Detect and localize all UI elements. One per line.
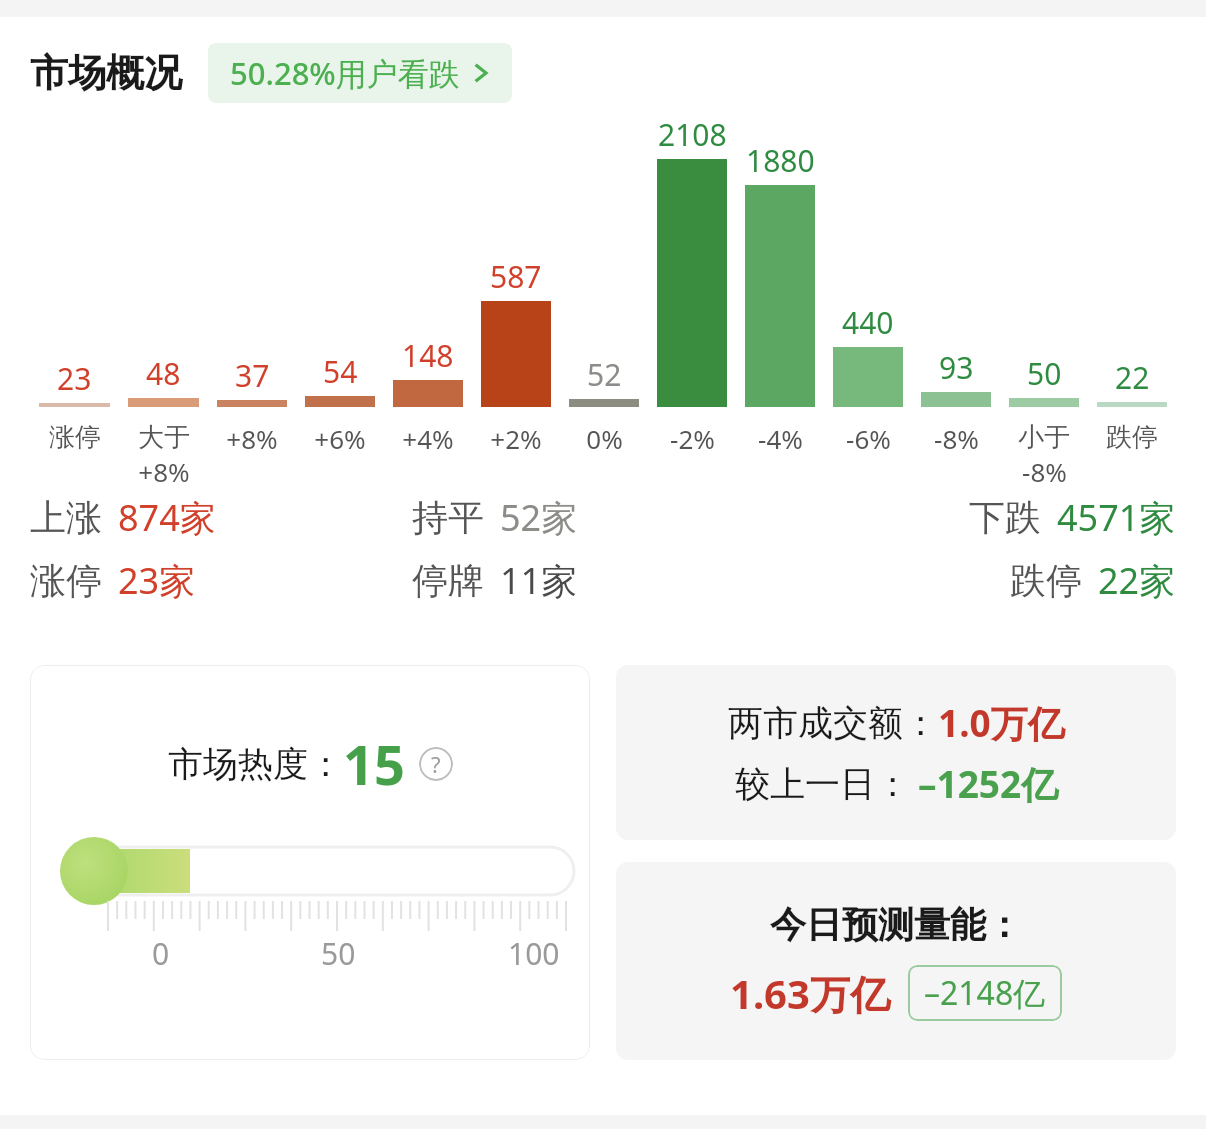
staticText: 52家 [500, 493, 578, 542]
button[interactable]: 23 [30, 103, 119, 493]
staticText: 上涨 [30, 495, 102, 540]
staticText: –2148亿 [924, 971, 1046, 1015]
staticText: 今日预测量能： [770, 902, 1022, 947]
staticText: 23家 [118, 556, 196, 605]
button[interactable]: 市场热度： [30, 665, 590, 1060]
staticText: -4% [758, 421, 803, 456]
staticText: 较上一日： [735, 762, 910, 806]
staticText: 市场概况 [30, 49, 182, 97]
staticText: 市场热度： [168, 742, 343, 786]
button[interactable]: 37 [208, 103, 296, 493]
staticText: -6% [846, 421, 891, 456]
staticText: 22家 [1098, 556, 1176, 605]
staticText: 440 [842, 302, 894, 343]
staticText: 52 [587, 354, 622, 395]
staticText: -2% [670, 421, 715, 456]
staticText: 1880 [746, 140, 815, 181]
staticText: 50 [1027, 353, 1062, 394]
staticText: 1.0万亿 [938, 697, 1065, 748]
staticText: 587 [490, 256, 542, 297]
button[interactable]: 今日预测量能： [616, 862, 1176, 1060]
staticText: +6% [314, 421, 366, 456]
staticText: 大于 [138, 421, 190, 454]
staticText: 小于 [1018, 421, 1070, 454]
staticText: 23 [57, 358, 92, 399]
staticText: 4571家 [1057, 493, 1176, 542]
button[interactable]: 两市成交额： [616, 665, 1176, 840]
button[interactable]: 2108 [648, 103, 736, 493]
button[interactable]: 52 [560, 103, 648, 493]
button[interactable]: 50.28%用户看跌 [208, 43, 512, 103]
staticText: 15 [343, 727, 405, 801]
staticText: +8% [138, 454, 190, 489]
staticText: 22 [1115, 357, 1150, 398]
staticText: +4% [402, 421, 454, 456]
staticText: 2108 [658, 114, 727, 155]
button[interactable]: 440 [824, 103, 912, 493]
staticText: 50 [321, 933, 356, 974]
staticText: 0% [586, 421, 623, 456]
staticText: 93 [939, 347, 974, 388]
staticText: 涨停 [30, 558, 102, 603]
button[interactable]: 1880 [736, 103, 824, 493]
staticText: –1252亿 [918, 758, 1059, 809]
staticText: -8% [934, 421, 979, 456]
staticText: 停牌 [412, 558, 484, 603]
staticText: 两市成交额： [728, 701, 938, 745]
staticText: +2% [490, 421, 542, 456]
button[interactable]: 93 [912, 103, 1000, 493]
staticText: 涨停 [49, 421, 101, 454]
staticText: 1.63万亿 [730, 966, 890, 1021]
button[interactable]: 帮助 [419, 747, 453, 781]
staticText: ? [431, 749, 441, 779]
staticText: 100 [508, 933, 560, 974]
button[interactable]: 148 [384, 103, 472, 493]
staticText: +8% [226, 421, 278, 456]
button[interactable]: 22 [1088, 103, 1176, 493]
staticText: 跌停 [1106, 421, 1158, 454]
staticText: 148 [402, 335, 454, 376]
button[interactable]: 54 [296, 103, 384, 493]
button[interactable]: 587 [472, 103, 560, 493]
staticText: 跌停 [1010, 558, 1082, 603]
button[interactable]: 48 [119, 103, 208, 493]
staticText: 37 [235, 355, 270, 396]
staticText: 48 [146, 353, 181, 394]
staticText: 11家 [500, 556, 578, 605]
staticText: -8% [1022, 454, 1067, 489]
button[interactable]: 50 [1000, 103, 1088, 493]
staticText: 874家 [118, 493, 216, 542]
staticText: 54 [323, 351, 358, 392]
staticText: 持平 [412, 495, 484, 540]
staticText: 0 [152, 933, 170, 974]
staticText: 50.28%用户看跌 [230, 52, 460, 94]
staticText: 下跌 [969, 495, 1041, 540]
